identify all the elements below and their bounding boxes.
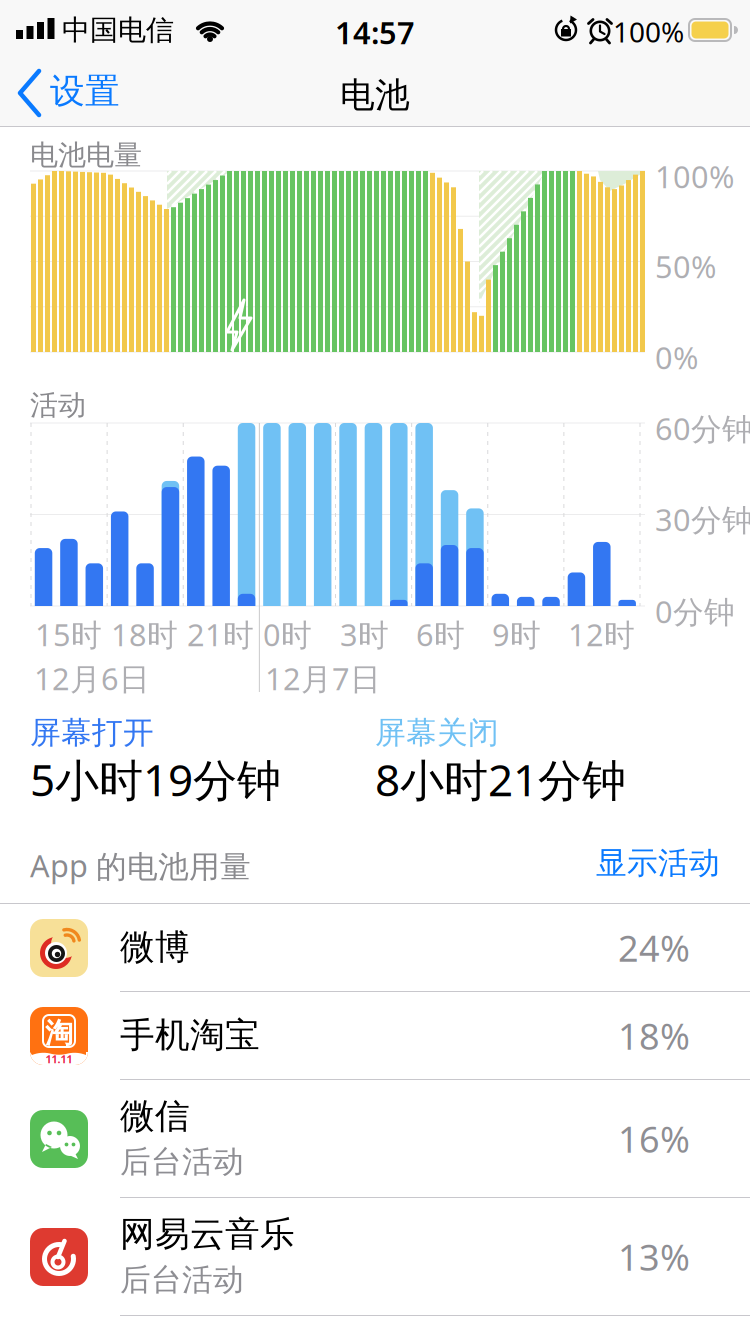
- staticText: 微博: [120, 926, 190, 969]
- staticText: 12月7日: [265, 658, 381, 699]
- staticText: 12月6日: [34, 658, 150, 699]
- staticText: 后台活动: [120, 1143, 244, 1181]
- staticText: 50%: [655, 246, 716, 287]
- button[interactable]: 淘: [0, 992, 750, 1080]
- staticText: 21时: [187, 614, 254, 655]
- button[interactable]: 设置: [12, 62, 142, 124]
- staticText: 设置: [50, 70, 120, 113]
- staticText: 微信: [120, 1095, 190, 1138]
- staticText: 0%: [655, 337, 698, 378]
- button[interactable]: 微信: [0, 1080, 750, 1198]
- staticText: 16%: [618, 1115, 690, 1163]
- staticText: 18%: [618, 1012, 690, 1060]
- staticText: 24%: [618, 924, 690, 972]
- staticText: 100%: [655, 156, 734, 197]
- staticText: 电池电量: [30, 138, 142, 172]
- staticText: 淘: [45, 1016, 73, 1050]
- staticText: 30分钟: [655, 499, 750, 540]
- staticText: 0分钟: [655, 591, 735, 632]
- staticText: 12时: [568, 614, 635, 655]
- staticText: 15时: [35, 614, 102, 655]
- staticText: 18时: [111, 614, 178, 655]
- button[interactable]: 屏幕关闭: [375, 712, 705, 808]
- staticText: 后台活动: [120, 1261, 244, 1299]
- staticText: 11.11: [45, 1052, 72, 1066]
- staticText: 60分钟: [655, 408, 750, 449]
- staticText: 手机淘宝: [120, 1014, 260, 1057]
- staticText: 5小时19分钟: [30, 750, 281, 808]
- staticText: 9时: [492, 614, 541, 655]
- staticText: 屏幕打开: [30, 714, 154, 752]
- button[interactable]: 屏幕打开: [30, 712, 360, 808]
- staticText: App 的电池用量: [30, 845, 251, 886]
- staticText: 中国电信: [62, 13, 174, 47]
- button[interactable]: 网易云音乐: [0, 1198, 750, 1316]
- staticText: 显示活动: [596, 844, 720, 882]
- staticText: 8小时21分钟: [375, 750, 626, 808]
- staticText: 网易云音乐: [120, 1213, 295, 1256]
- staticText: 100%: [613, 13, 684, 50]
- staticText: 14:57: [335, 12, 415, 53]
- staticText: 电池: [340, 74, 410, 117]
- staticText: 活动: [30, 388, 86, 422]
- staticText: 0时: [263, 614, 312, 655]
- staticText: 3时: [340, 614, 389, 655]
- staticText: 屏幕关闭: [375, 714, 499, 752]
- staticText: 6时: [416, 614, 465, 655]
- button[interactable]: 显示活动: [550, 838, 720, 888]
- staticText: 13%: [618, 1233, 690, 1281]
- button[interactable]: 微博: [0, 904, 750, 992]
